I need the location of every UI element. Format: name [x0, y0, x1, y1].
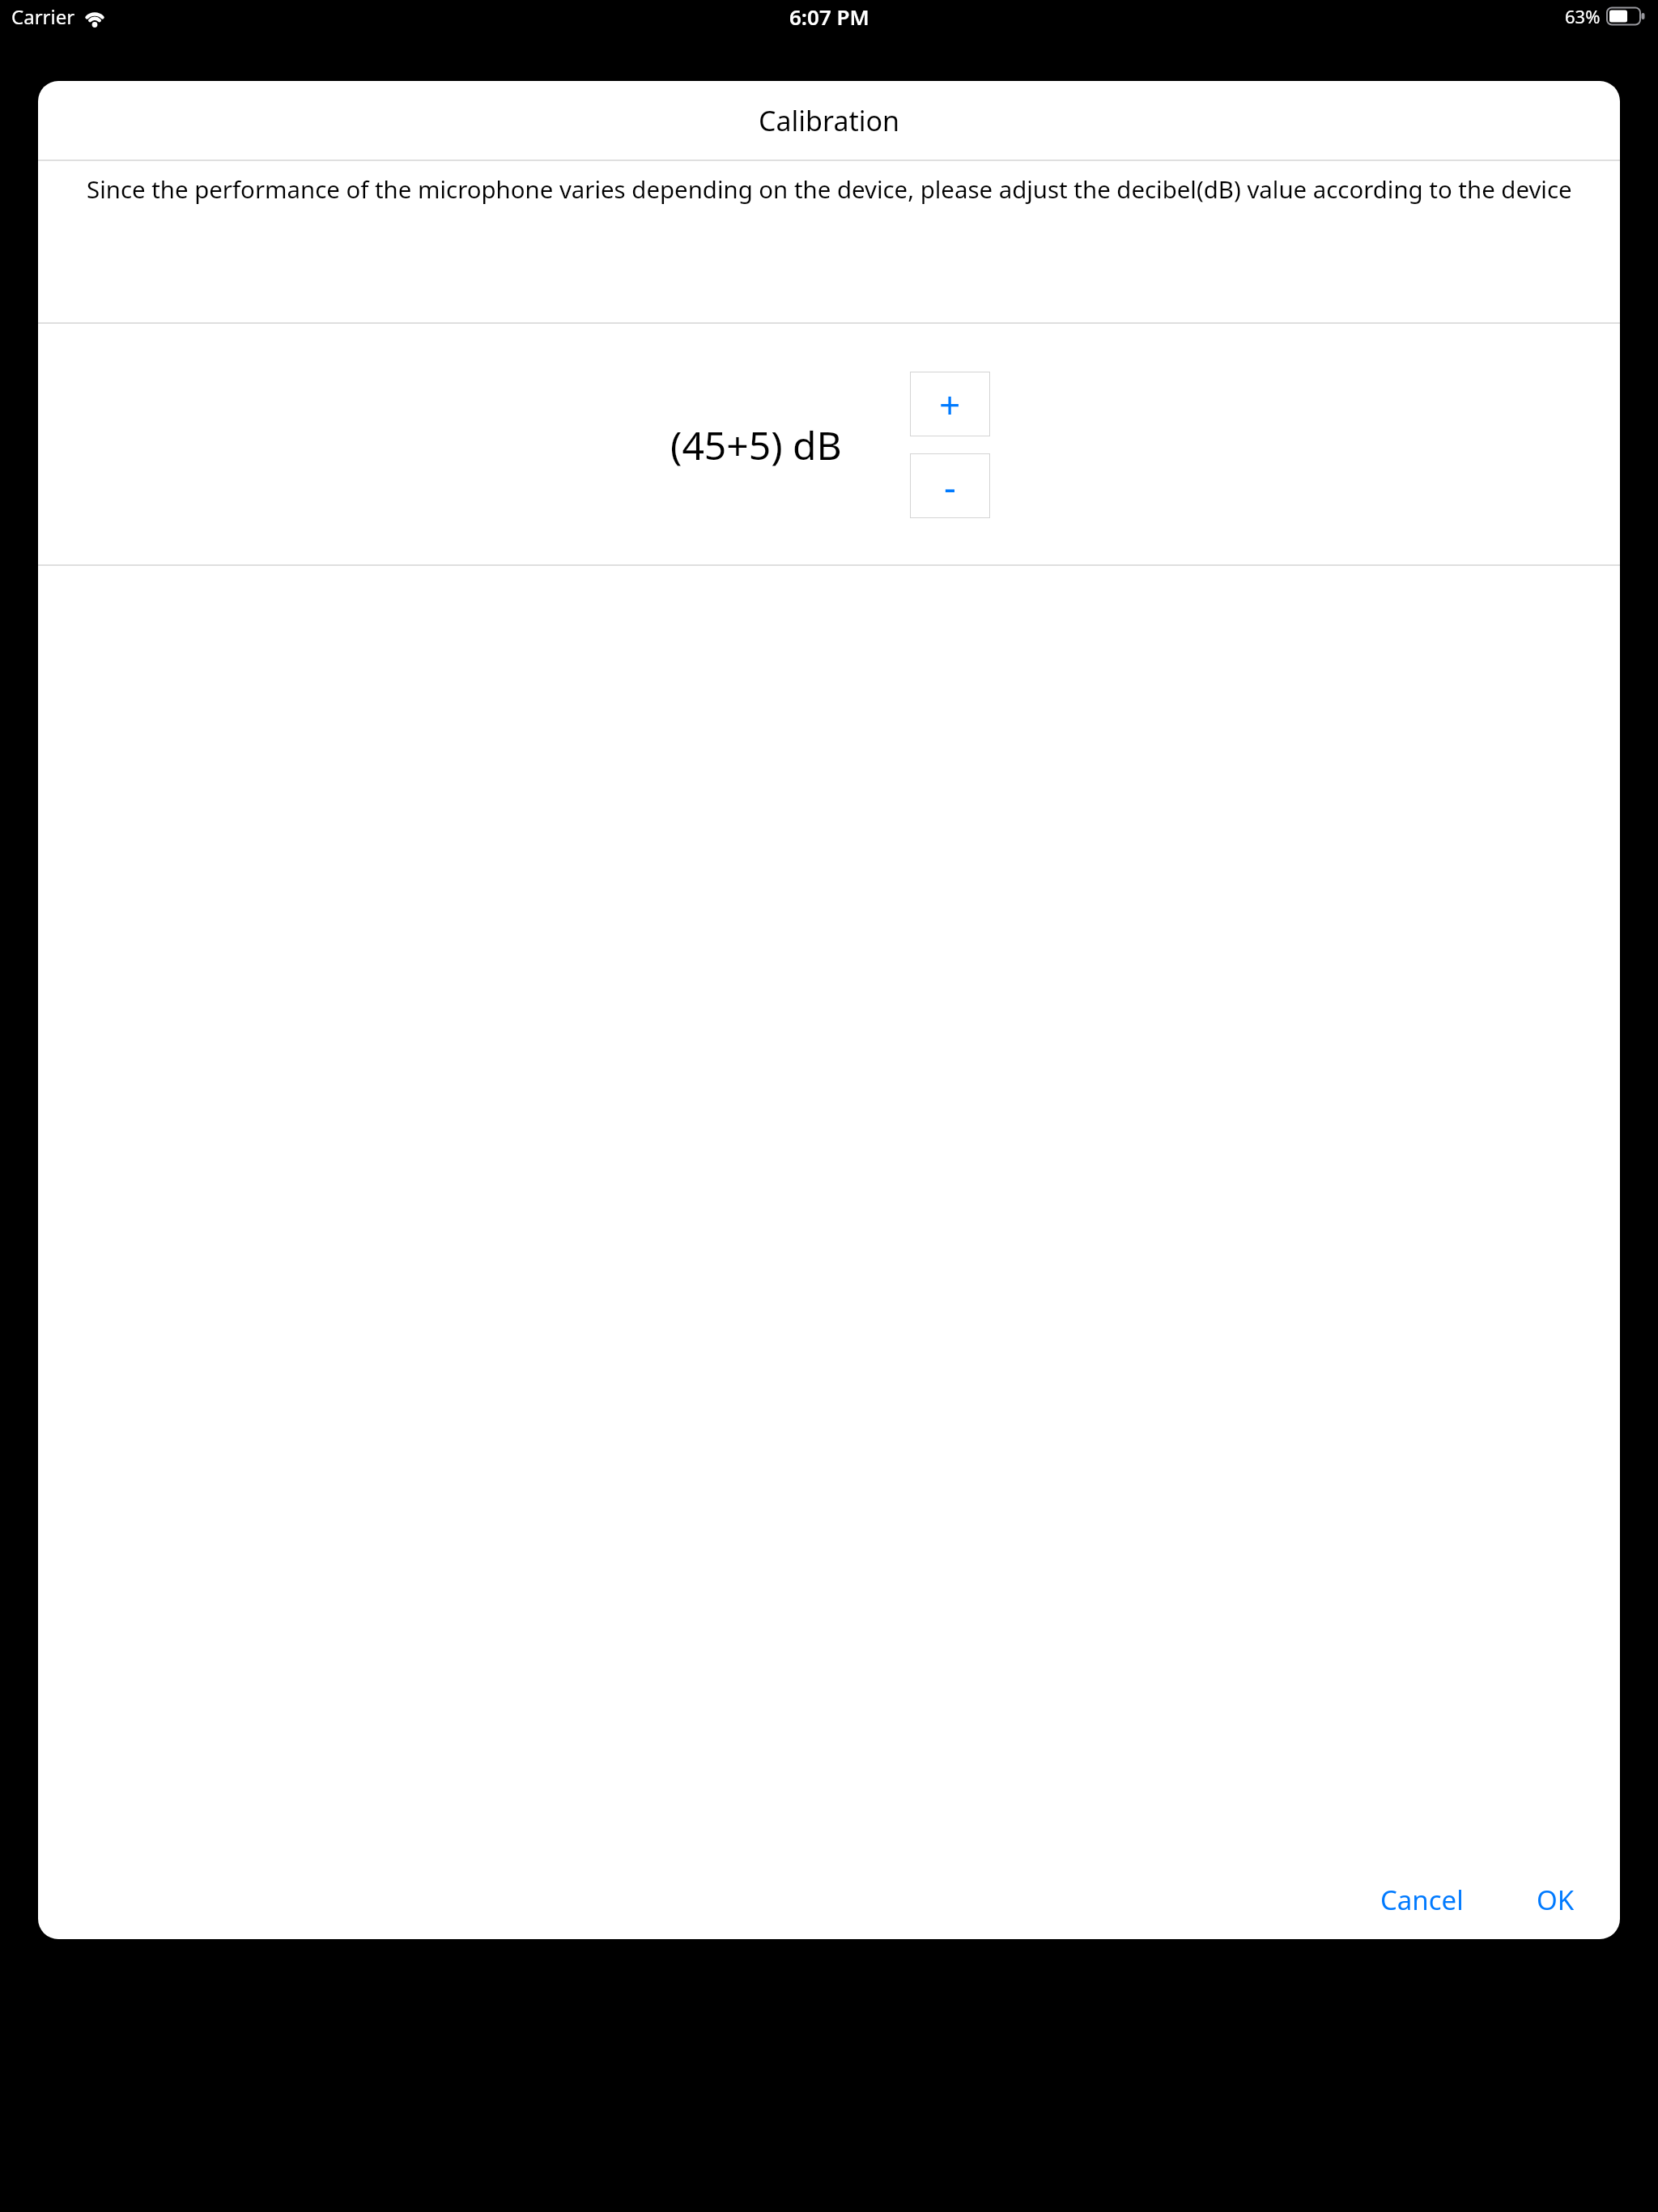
staticText: Cancel: [1380, 1882, 1464, 1918]
staticText: OK: [1537, 1882, 1575, 1918]
button[interactable]: -: [910, 453, 990, 518]
button[interactable]: OK: [1537, 1882, 1575, 1918]
staticText: -: [944, 461, 956, 512]
button[interactable]: Cancel: [1380, 1882, 1464, 1918]
button[interactable]: +: [910, 372, 990, 436]
staticText: (45+5) dB: [670, 419, 842, 471]
staticText: +: [939, 379, 961, 430]
staticText: Since the performance of the microphone …: [87, 173, 1572, 206]
staticText: 63%: [1565, 4, 1601, 28]
staticText: Calibration: [759, 102, 900, 139]
staticText: Carrier: [11, 3, 75, 30]
staticText: 6:07 PM: [789, 2, 869, 31]
